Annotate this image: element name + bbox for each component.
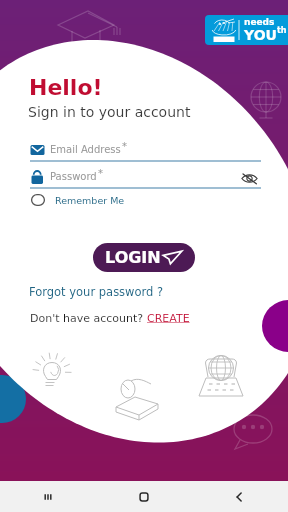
button[interactable]: Home	[96, 481, 192, 512]
button[interactable]: Forgot your password ?	[29, 285, 164, 298]
staticText: needs	[244, 17, 275, 27]
staticText: *	[98, 168, 103, 180]
staticText: YOU	[244, 27, 277, 43]
staticText: Sign in to your account	[28, 104, 191, 120]
staticText: *	[122, 141, 127, 153]
button[interactable]: CREATE	[147, 312, 190, 325]
staticText: Don't have account?	[30, 312, 147, 325]
button[interactable]: LOGIN	[93, 243, 195, 272]
button[interactable]: Email Address	[30, 139, 261, 163]
button[interactable]: Recent apps	[0, 481, 96, 512]
button[interactable]: Remember Me	[31, 193, 125, 207]
staticText: Hello!	[29, 75, 103, 101]
staticText: Password	[50, 171, 97, 183]
button[interactable]: Back	[192, 481, 288, 512]
staticText: th	[277, 26, 287, 35]
button[interactable]: Nestle needs YOUth	[205, 15, 288, 45]
staticText: Remember Me	[55, 195, 125, 206]
staticText: Email Address	[50, 144, 121, 156]
button[interactable]: Password	[30, 166, 261, 190]
staticText: LOGIN	[105, 248, 161, 267]
button[interactable]: Show password	[240, 169, 259, 188]
